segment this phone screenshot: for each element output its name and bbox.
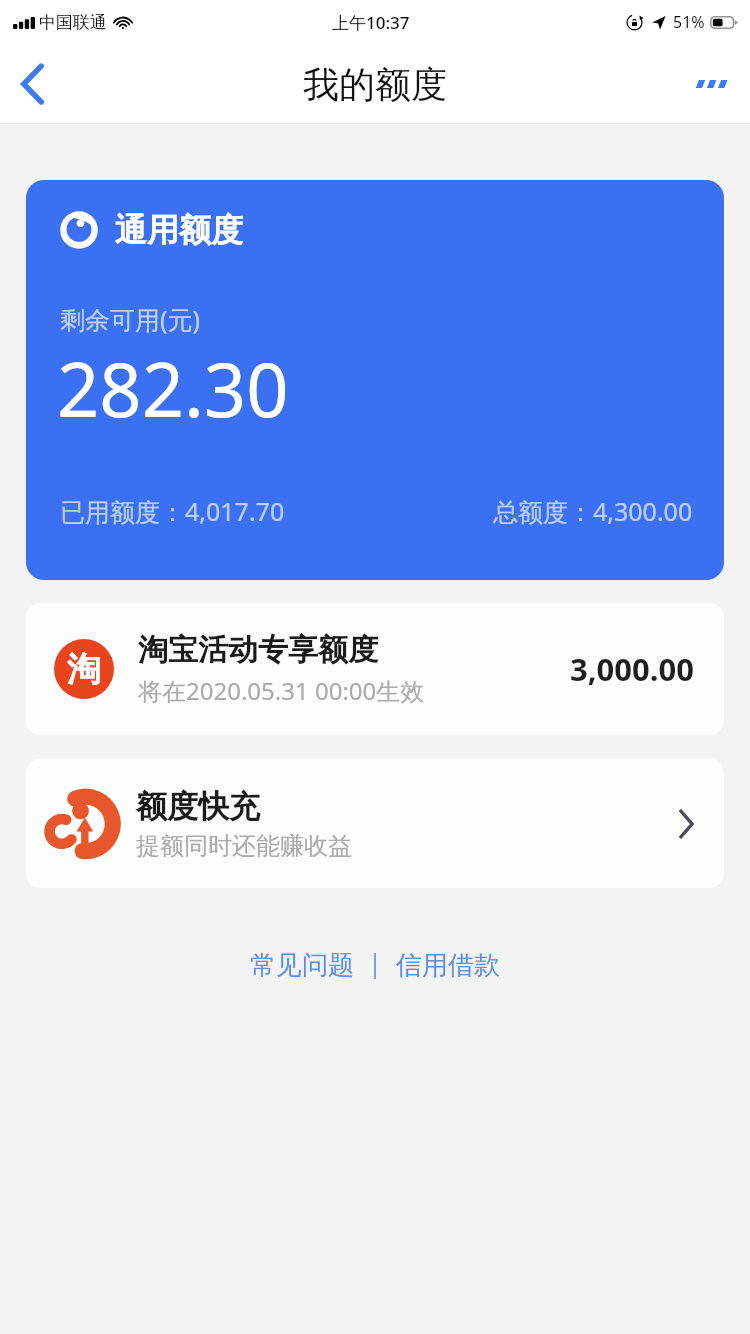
button[interactable]: Back — [0, 52, 64, 116]
staticText: 51% — [673, 11, 705, 33]
button[interactable]: 淘 — [26, 603, 724, 735]
staticText: 3,000.00 — [570, 648, 694, 690]
staticText: 282.30 — [57, 338, 289, 439]
button[interactable]: 信用借款 — [390, 943, 506, 988]
staticText: 剩余可用(元) — [60, 302, 201, 336]
button[interactable]: More options — [676, 47, 750, 121]
staticText: 常见问题 — [250, 949, 354, 982]
staticText: 已用额度：4,017.70 — [60, 494, 285, 528]
button[interactable]: 额度快充 — [26, 759, 724, 888]
staticText: 淘 — [67, 648, 101, 691]
staticText: 总额度：4,300.00 — [493, 494, 693, 528]
button[interactable]: 通用额度 — [26, 180, 724, 580]
staticText: 将在2020.05.31 00:00生效 — [138, 674, 425, 707]
button[interactable]: 常见问题 — [244, 943, 360, 988]
staticText: 中国联通 — [39, 12, 107, 33]
staticText: 上午10:37 — [332, 11, 410, 34]
staticText: 提额同时还能赚收益 — [136, 831, 352, 861]
staticText: 淘宝活动专享额度 — [138, 631, 378, 669]
staticText: 通用额度 — [115, 210, 243, 250]
staticText: 我的额度 — [303, 62, 447, 107]
staticText: 信用借款 — [396, 949, 500, 982]
staticText: 额度快充 — [136, 787, 260, 826]
